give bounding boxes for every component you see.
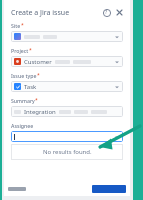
- button[interactable]: Customer: [11, 56, 123, 67]
- staticText: Summary: [11, 97, 35, 104]
- staticText: No results found.: [43, 148, 92, 156]
- button[interactable]: Task: [11, 81, 123, 92]
- staticText: Project: [11, 47, 29, 54]
- button[interactable]: Create: [92, 185, 126, 193]
- staticText: Task: [24, 83, 37, 91]
- staticText: Customer: [24, 58, 52, 66]
- staticText: Integration: [24, 108, 56, 116]
- staticText: Issue type: [11, 72, 37, 79]
- staticText: Site: [11, 22, 21, 29]
- staticText: *: [35, 97, 38, 104]
- staticText: Assignee: [11, 122, 34, 129]
- button[interactable]: More options: [8, 187, 26, 191]
- staticText: *: [21, 22, 24, 29]
- button[interactable]: [11, 31, 123, 42]
- staticText: Create a Jira issue: [11, 8, 70, 18]
- button[interactable]: [11, 131, 123, 142]
- staticText: *: [29, 47, 32, 54]
- staticText: ?: [105, 9, 108, 16]
- staticText: *: [37, 72, 40, 79]
- button[interactable]: Integration: [11, 106, 123, 117]
- button[interactable]: Close: [114, 7, 125, 18]
- button[interactable]: Help: [101, 7, 112, 18]
